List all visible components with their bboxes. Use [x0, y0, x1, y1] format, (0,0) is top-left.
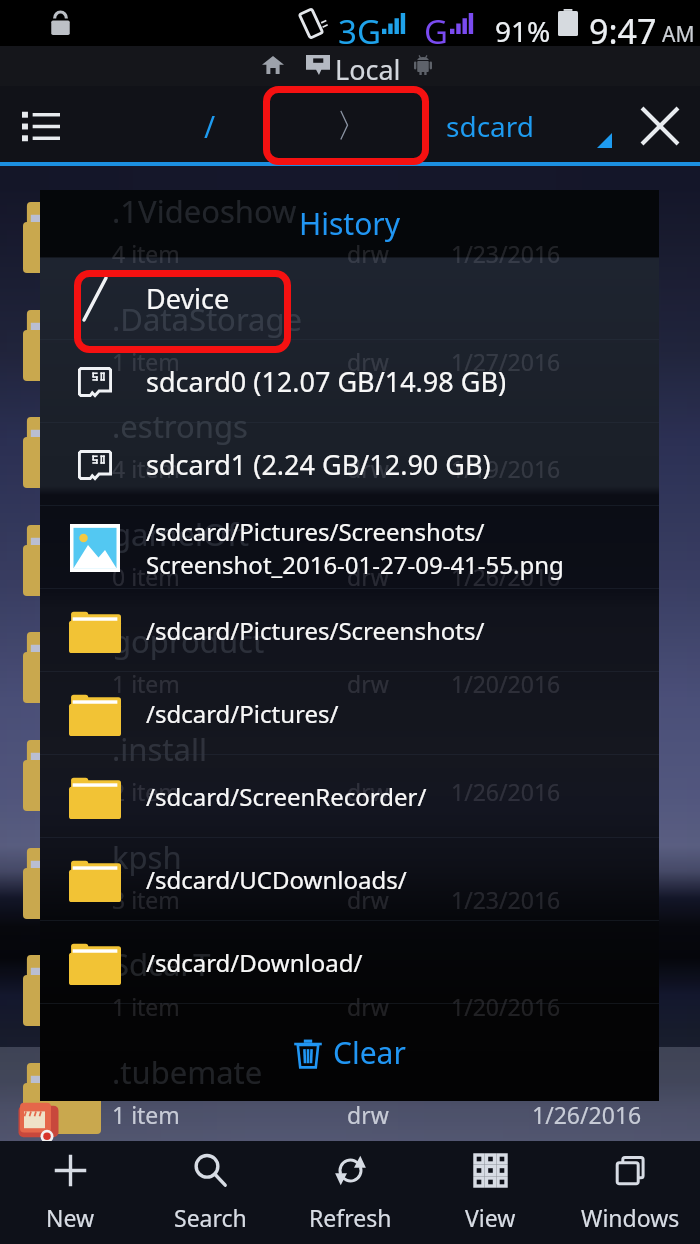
button[interactable]: Close	[620, 86, 700, 166]
button[interactable]: .install	[0, 724, 700, 831]
staticText: /	[204, 106, 216, 147]
staticText: New	[46, 1202, 95, 1233]
staticText: 2 item	[112, 776, 180, 807]
staticText: /sdcard/Download/	[146, 946, 363, 979]
staticText: SdcarT	[112, 943, 211, 985]
staticText: drw	[347, 668, 389, 699]
staticText: 4 item	[112, 238, 180, 269]
staticText: 1/27/2016	[451, 346, 561, 377]
staticText: 3G	[338, 9, 381, 54]
staticText: drw	[347, 884, 389, 915]
staticText: 1 item	[112, 668, 180, 699]
button[interactable]: sdcard0 (12.07 GB/14.98 GB)	[40, 340, 659, 423]
staticText: sdcard	[446, 107, 535, 145]
button[interactable]: New	[0, 1141, 140, 1244]
button[interactable]: 〉	[270, 86, 435, 166]
button[interactable]: sdcard1 (2.24 GB/12.90 GB)	[40, 423, 659, 506]
staticText: drw	[347, 561, 389, 592]
staticText: .DataStorage	[112, 298, 302, 340]
button[interactable]: Clear	[40, 1004, 659, 1101]
staticText: 9:47	[589, 8, 657, 54]
staticText: 1/26/2016	[451, 776, 561, 807]
button[interactable]: /	[150, 86, 270, 166]
staticText: /sdcard/UCDownloads/	[146, 863, 407, 896]
staticText: 1/26/2016	[532, 561, 642, 592]
staticText: 〉	[336, 105, 369, 147]
staticText: drw	[347, 453, 389, 484]
staticText: 3 item	[112, 884, 180, 915]
staticText: kpsh	[112, 836, 182, 878]
staticText: drw	[347, 991, 389, 1022]
staticText: drw	[347, 1099, 389, 1130]
button[interactable]: Menu	[0, 86, 82, 166]
button[interactable]: .tubemate	[0, 1047, 700, 1154]
staticText: drw	[347, 991, 389, 1022]
staticText: 1/20/2016	[532, 668, 642, 699]
button[interactable]: View	[420, 1141, 560, 1244]
staticText: /sdcard/Pictures/Screenshots/	[146, 614, 485, 647]
staticText: /sdcard/Pictures/Screenshots/	[146, 515, 485, 548]
staticText: AM	[662, 20, 695, 49]
staticText: drw	[347, 776, 389, 807]
button[interactable]: .estrongs	[0, 401, 700, 508]
staticText: 91%	[495, 12, 551, 50]
staticText: sdcard0 (12.07 GB/14.98 GB)	[146, 363, 507, 400]
staticText: Device	[146, 280, 230, 317]
button[interactable]: gamelOft	[0, 509, 700, 616]
button[interactable]: /sdcard/ScreenRecorder/	[40, 755, 659, 838]
staticText: .install	[112, 728, 207, 770]
button[interactable]: /sdcard/Download/	[40, 921, 659, 1004]
staticText: 1/26/2016	[532, 776, 642, 807]
button[interactable]: sdcard	[430, 86, 550, 166]
button[interactable]: Device	[40, 257, 659, 340]
staticText: 1 item	[112, 991, 180, 1022]
staticText: drw	[347, 776, 389, 807]
staticText: 1/23/2016	[451, 884, 561, 915]
staticText: 1 item	[112, 668, 180, 699]
staticText: 1/20/2016	[451, 991, 561, 1022]
staticText: 0 item	[112, 561, 180, 592]
button[interactable]: /sdcard/Pictures/Screenshots/	[40, 506, 659, 589]
staticText: /sdcard/ScreenRecorder/	[146, 780, 427, 813]
button[interactable]: SdcarT	[0, 939, 700, 1046]
staticText: 1 item	[112, 346, 180, 377]
staticText: 1/23/2016	[532, 884, 642, 915]
staticText: drw	[347, 668, 389, 699]
button[interactable]: goproduct	[0, 616, 700, 723]
button[interactable]: .1Videoshow	[0, 186, 700, 293]
staticText: G	[424, 9, 449, 54]
staticText: drw	[347, 453, 389, 484]
staticText: 1 item	[112, 346, 180, 377]
staticText: 1/19/2016	[532, 453, 642, 484]
button[interactable]: kpsh	[0, 832, 700, 939]
button[interactable]: /sdcard/UCDownloads/	[40, 838, 659, 921]
staticText: SdcarT	[112, 943, 211, 985]
staticText: 1/19/2016	[451, 453, 561, 484]
staticText: /sdcard/Pictures/	[146, 697, 339, 730]
staticText: 1/26/2016	[451, 561, 561, 592]
button[interactable]: Windows	[560, 1141, 700, 1244]
staticText: gamelOft	[112, 513, 249, 555]
staticText: 1/23/2016	[532, 238, 642, 269]
button[interactable]: .DataStorage	[0, 294, 700, 401]
staticText: History	[299, 203, 401, 244]
button[interactable]: /sdcard/Pictures/	[40, 672, 659, 755]
staticText: Clear	[333, 1032, 406, 1073]
staticText: 1/23/2016	[451, 238, 561, 269]
staticText: goproduct	[112, 620, 265, 662]
staticText: kpsh	[112, 836, 182, 878]
staticText: 4 item	[112, 453, 180, 484]
staticText: 1/20/2016	[532, 991, 642, 1022]
staticText: gamelOft	[112, 513, 249, 555]
staticText: drw	[347, 238, 389, 269]
staticText: View	[465, 1202, 516, 1233]
button[interactable]: Search	[140, 1141, 280, 1244]
button[interactable]: Refresh	[280, 1141, 420, 1244]
staticText: 3 item	[112, 884, 180, 915]
button[interactable]: /sdcard/Pictures/Screenshots/	[40, 589, 659, 672]
staticText: 2 item	[112, 776, 180, 807]
staticText: .estrongs	[112, 405, 248, 447]
